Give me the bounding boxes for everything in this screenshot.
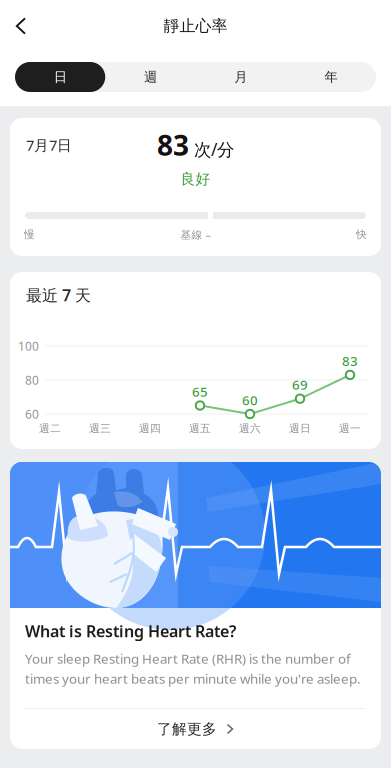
staticText: 了解更多 bbox=[157, 720, 217, 738]
staticText: 週 bbox=[144, 69, 157, 85]
staticText: 慢 bbox=[24, 228, 35, 241]
staticText: 基線 – bbox=[180, 227, 210, 242]
staticText: 年 bbox=[324, 69, 337, 85]
staticText: 週一 bbox=[339, 422, 361, 435]
button[interactable]: 月 bbox=[195, 62, 286, 92]
staticText: 60 bbox=[242, 391, 258, 409]
staticText: 週五 bbox=[189, 422, 211, 435]
staticText: 週四 bbox=[139, 422, 161, 435]
staticText: 7月7日 bbox=[26, 135, 72, 155]
button[interactable]: 週 bbox=[105, 62, 195, 92]
staticText: 83 bbox=[342, 352, 358, 370]
button[interactable]: 年 bbox=[286, 62, 376, 92]
staticText: 週三 bbox=[89, 422, 111, 435]
staticText: 快 bbox=[356, 228, 367, 241]
staticText: 良好 bbox=[180, 170, 210, 188]
button[interactable]: 了解更多 bbox=[10, 709, 381, 749]
button[interactable]: 日 bbox=[15, 62, 105, 92]
staticText: Your sleep Resting Heart Rate (RHR) is t… bbox=[25, 650, 351, 667]
staticText: 日 bbox=[54, 69, 67, 85]
staticText: What is Resting Heart Rate? bbox=[25, 620, 236, 642]
staticText: times your heart beats per minute while … bbox=[25, 670, 361, 687]
staticText: 83 bbox=[157, 126, 189, 164]
staticText: 65 bbox=[192, 383, 208, 400]
button[interactable]: Back bbox=[0, 9, 37, 43]
staticText: 週二 bbox=[39, 422, 61, 435]
staticText: 次/分 bbox=[194, 138, 234, 161]
staticText: 週日 bbox=[289, 422, 311, 435]
staticText: 100 bbox=[18, 338, 39, 354]
staticText: 60 bbox=[25, 406, 39, 422]
staticText: 週六 bbox=[239, 422, 261, 435]
staticText: 月 bbox=[234, 69, 247, 85]
staticText: 69 bbox=[292, 376, 308, 393]
staticText: 最近 7 天 bbox=[26, 284, 91, 306]
staticText: 80 bbox=[25, 372, 39, 388]
staticText: 靜止心率 bbox=[163, 16, 227, 36]
